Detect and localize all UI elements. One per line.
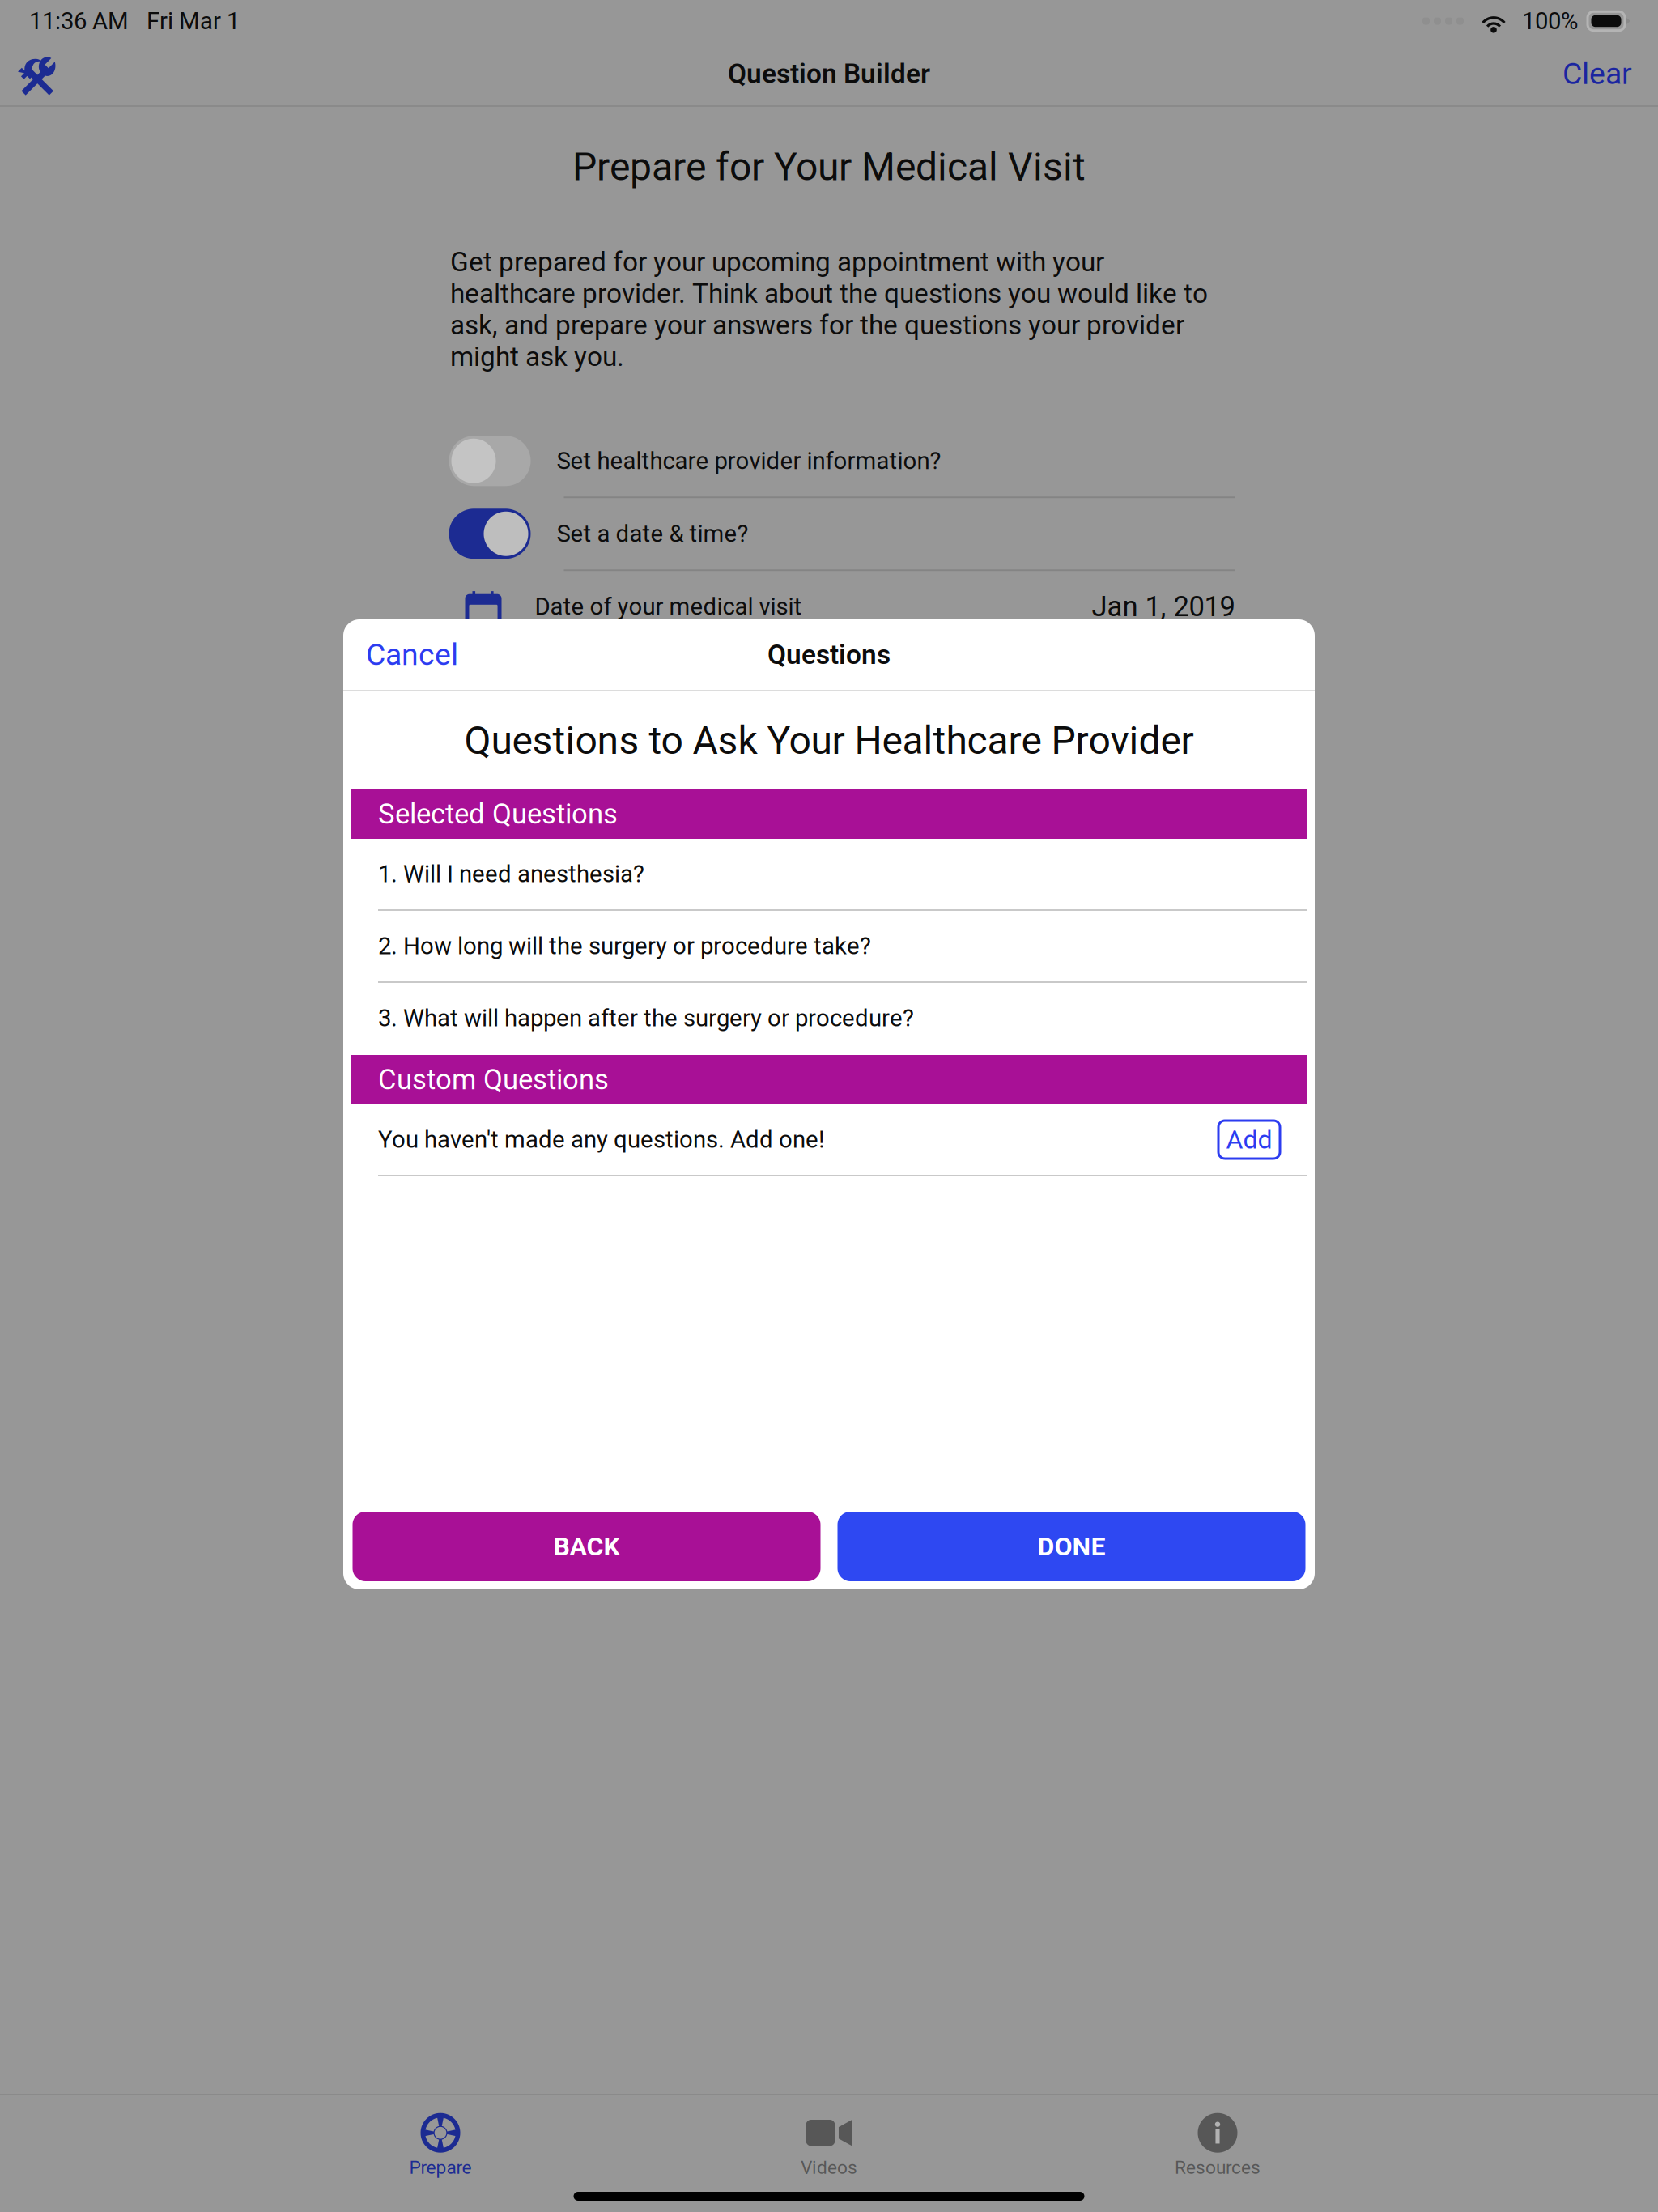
staticText: 1. Will I need anesthesia? <box>378 860 644 888</box>
staticText: Clear <box>1562 56 1632 91</box>
staticText: Fri Mar 1 <box>147 7 240 35</box>
staticText: Set a date & time? <box>557 520 748 548</box>
staticText: 100% <box>1522 7 1578 35</box>
staticText: Prepare for Your Medical Visit <box>572 144 1086 190</box>
staticText: BACK <box>553 1531 620 1562</box>
staticText: Videos <box>801 2157 857 2178</box>
button[interactable]: BACK <box>353 1512 820 1581</box>
button[interactable]: Clear <box>1535 42 1632 105</box>
staticText: Prepare <box>409 2157 472 2178</box>
staticText: Add <box>1226 1124 1272 1155</box>
staticText: DONE <box>1037 1531 1105 1562</box>
button[interactable]: DONE <box>838 1512 1305 1581</box>
staticText: Resources <box>1175 2157 1261 2178</box>
staticText: Set healthcare provider information? <box>557 447 941 475</box>
staticText: Question Builder <box>728 58 930 90</box>
button[interactable]: Cancel <box>366 619 458 690</box>
staticText: You haven't made any questions. Add one! <box>378 1126 825 1154</box>
button[interactable]: Videos <box>635 2108 1023 2183</box>
staticText: Custom Questions <box>378 1063 609 1096</box>
staticText: Questions <box>767 639 891 670</box>
staticText: Questions to Ask Your Healthcare Provide… <box>464 718 1194 763</box>
staticText: Cancel <box>366 637 458 672</box>
button[interactable]: Resources <box>1023 2108 1412 2183</box>
staticText: 2. How long will the surgery or procedur… <box>378 932 871 960</box>
button[interactable]: Tools <box>21 42 96 105</box>
staticText: 11:36 AM <box>29 7 129 35</box>
button[interactable]: Add <box>1218 1121 1280 1159</box>
button[interactable]: Prepare <box>246 2108 635 2183</box>
staticText: 3. What will happen after the surgery or… <box>378 1004 914 1032</box>
staticText: Date of your medical visit <box>535 593 802 621</box>
staticText: Get prepared for your upcoming appointme… <box>450 246 1208 373</box>
staticText: Jan 1, 2019 <box>1092 590 1235 623</box>
staticText: Selected Questions <box>378 798 618 831</box>
